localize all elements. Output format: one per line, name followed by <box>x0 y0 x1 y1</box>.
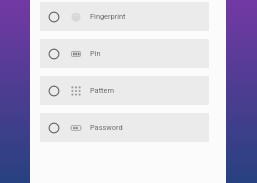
other: Pin <box>71 49 81 59</box>
staticText: Fingerprint <box>90 12 126 21</box>
button[interactable]: Fingerprint <box>40 2 209 31</box>
staticText: Pattern <box>90 86 114 95</box>
button[interactable]: Pin <box>40 39 209 68</box>
other: Password <box>71 123 81 133</box>
other: Pattern <box>71 86 81 96</box>
button[interactable]: Pattern <box>40 76 209 105</box>
staticText: Password <box>90 123 123 132</box>
other: Fingerprint <box>71 12 81 22</box>
button[interactable]: Password <box>40 113 209 142</box>
staticText: Pin <box>90 49 101 58</box>
